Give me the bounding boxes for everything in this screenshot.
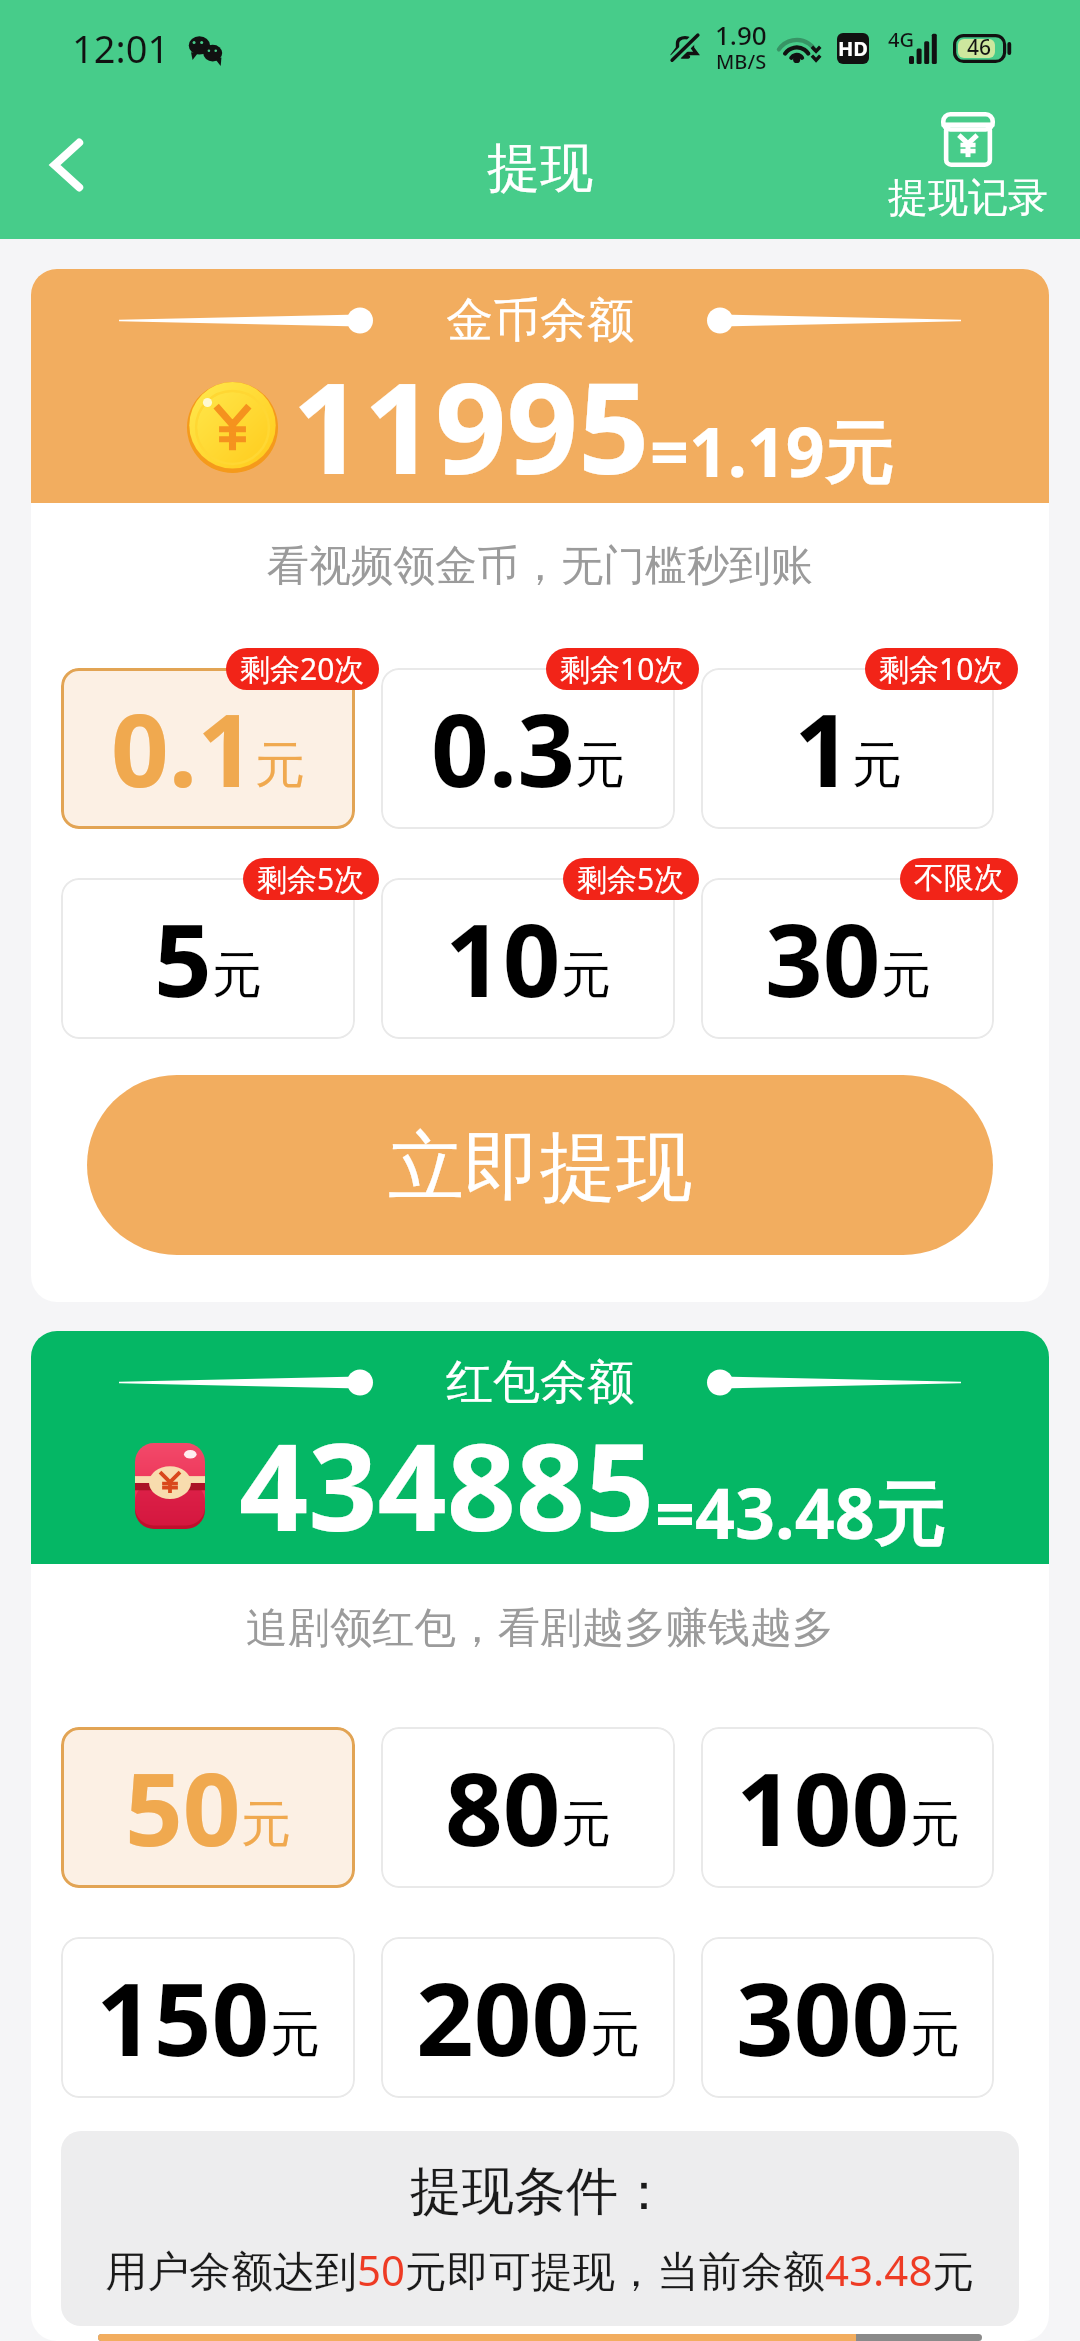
- staticText: 元: [590, 2003, 640, 2066]
- staticText: 0.1: [111, 679, 255, 817]
- staticText: 追剧领红包，看剧越多赚钱越多: [31, 1602, 1049, 1655]
- staticText: 元: [212, 944, 262, 1007]
- button[interactable]: 300: [701, 1937, 994, 2098]
- staticText: 0.3: [431, 679, 575, 817]
- button[interactable]: 0.3: [381, 668, 675, 829]
- staticText: 红包余额: [446, 1353, 634, 1412]
- button[interactable]: 30: [701, 878, 994, 1039]
- staticText: 50: [125, 1738, 241, 1876]
- staticText: 用户余额达到50元即可提现，当前余额43.48元: [105, 2241, 975, 2298]
- staticText: =43.48元: [655, 1464, 945, 1560]
- staticText: 1: [794, 679, 852, 817]
- staticText: 200: [416, 1948, 590, 2086]
- staticText: 金币余额: [446, 291, 634, 350]
- staticText: 元: [270, 2003, 320, 2066]
- staticText: 元: [561, 944, 611, 1007]
- staticText: 剩余5次: [257, 858, 365, 899]
- button[interactable]: 立即提现: [87, 1075, 993, 1255]
- staticText: 30: [765, 889, 881, 1027]
- button[interactable]: 80: [381, 1727, 675, 1888]
- staticText: HD: [838, 35, 868, 62]
- staticText: 元: [881, 944, 931, 1007]
- staticText: 元: [575, 734, 625, 797]
- button[interactable]: 200: [381, 1937, 675, 2098]
- staticText: 元: [241, 1793, 291, 1856]
- staticText: 元: [910, 2003, 960, 2066]
- button[interactable]: 50: [61, 1727, 355, 1888]
- staticText: 元: [910, 1793, 960, 1856]
- button[interactable]: 提现记录: [888, 112, 1048, 217]
- staticText: 立即提现: [388, 1120, 692, 1216]
- staticText: 46: [967, 33, 992, 62]
- staticText: MB/S: [716, 48, 767, 75]
- staticText: 10: [445, 889, 561, 1027]
- button[interactable]: 5: [61, 878, 355, 1039]
- staticText: 元: [852, 734, 902, 797]
- staticText: 80: [445, 1738, 561, 1876]
- staticText: 1.90: [715, 17, 767, 52]
- staticText: 提现条件：: [410, 2159, 670, 2225]
- staticText: 元: [255, 734, 305, 797]
- button[interactable]: 0.1: [61, 668, 355, 829]
- staticText: =1.19元: [650, 404, 893, 497]
- staticText: 5: [154, 889, 212, 1027]
- staticText: 元: [561, 1793, 611, 1856]
- button[interactable]: 立即提现: [98, 2334, 982, 2341]
- button[interactable]: 1: [701, 668, 994, 829]
- staticText: 434885: [239, 1402, 655, 1567]
- staticText: 100: [736, 1738, 910, 1876]
- staticText: 剩余10次: [879, 648, 1004, 689]
- staticText: 11995: [292, 340, 650, 510]
- staticText: 150: [96, 1948, 270, 2086]
- staticText: 看视频领金币，无门槛秒到账: [31, 540, 1049, 593]
- staticText: 4G: [888, 26, 914, 53]
- staticText: 不限次: [914, 859, 1004, 897]
- staticText: 剩余20次: [240, 648, 365, 689]
- staticText: 剩余10次: [560, 648, 685, 689]
- button[interactable]: 150: [61, 1937, 355, 2098]
- button[interactable]: 100: [701, 1727, 994, 1888]
- staticText: 12:01: [72, 22, 170, 74]
- staticText: 剩余5次: [577, 858, 685, 899]
- staticText: 300: [736, 1948, 910, 2086]
- staticText: 提现: [487, 135, 593, 202]
- staticText: 提现记录: [888, 172, 1048, 222]
- button[interactable]: 10: [381, 878, 675, 1039]
- button[interactable]: 返回: [22, 124, 114, 216]
